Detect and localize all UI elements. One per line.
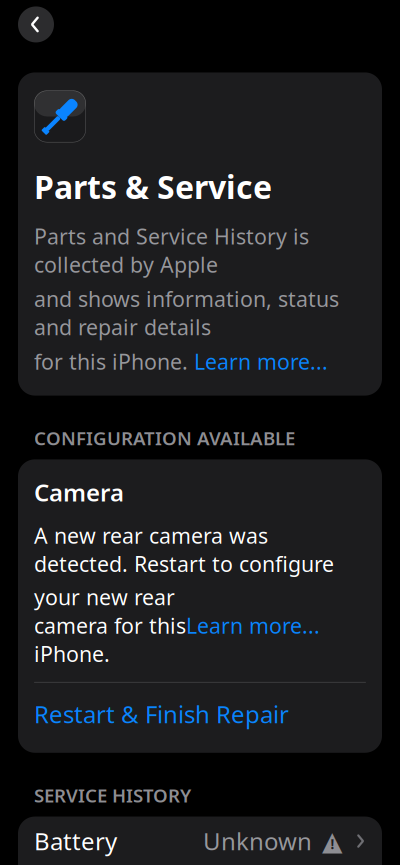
staticText: Camera: [34, 476, 124, 508]
staticText: Battery: [34, 825, 117, 857]
staticText: !: [330, 835, 334, 853]
staticText: Learn more...: [186, 611, 320, 639]
button[interactable]: Battery: [18, 817, 382, 865]
button[interactable]: Learn more...: [186, 611, 320, 639]
staticText: SERVICE HISTORY: [34, 783, 191, 808]
staticText: Unknown: [203, 825, 312, 857]
staticText: ▲: [322, 826, 343, 856]
staticText: Parts and Service History is collected b…: [34, 222, 309, 279]
staticText: your new rear camera for this iPhone.: [34, 583, 186, 668]
staticText: and shows information, status and repair…: [34, 285, 339, 341]
button[interactable]: Back: [18, 6, 54, 42]
staticText: for this iPhone.: [34, 347, 194, 376]
staticText: Restart & Finish Repair: [34, 698, 289, 730]
button[interactable]: Learn more...: [194, 347, 328, 376]
staticText: A new rear camera was detected. Restart …: [34, 521, 334, 578]
button[interactable]: Restart & Finish Repair: [34, 683, 366, 745]
staticText: Parts & Service: [34, 165, 272, 208]
staticText: Learn more...: [194, 347, 328, 376]
staticText: CONFIGURATION AVAILABLE: [34, 426, 295, 450]
